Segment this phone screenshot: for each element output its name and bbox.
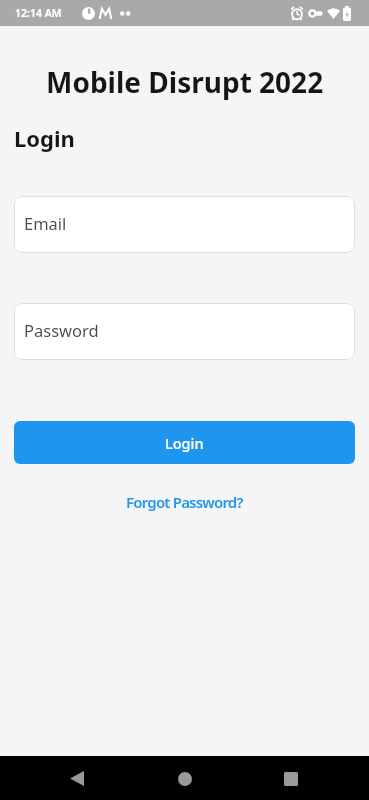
button[interactable]: Password: [14, 303, 355, 360]
staticText: Mobile Disrupt 2022: [46, 63, 324, 101]
button[interactable]: Login: [14, 421, 355, 464]
button[interactable]: [276, 764, 305, 793]
button[interactable]: Forgot Password?: [126, 492, 243, 512]
button[interactable]: [170, 764, 199, 793]
staticText: Password: [24, 319, 99, 341]
staticText: 12:14 AM: [15, 6, 62, 20]
staticText: Email: [24, 212, 67, 234]
staticText: Login: [165, 433, 204, 453]
staticText: Login: [14, 123, 75, 153]
button[interactable]: [62, 764, 91, 793]
button[interactable]: Email: [14, 196, 355, 253]
